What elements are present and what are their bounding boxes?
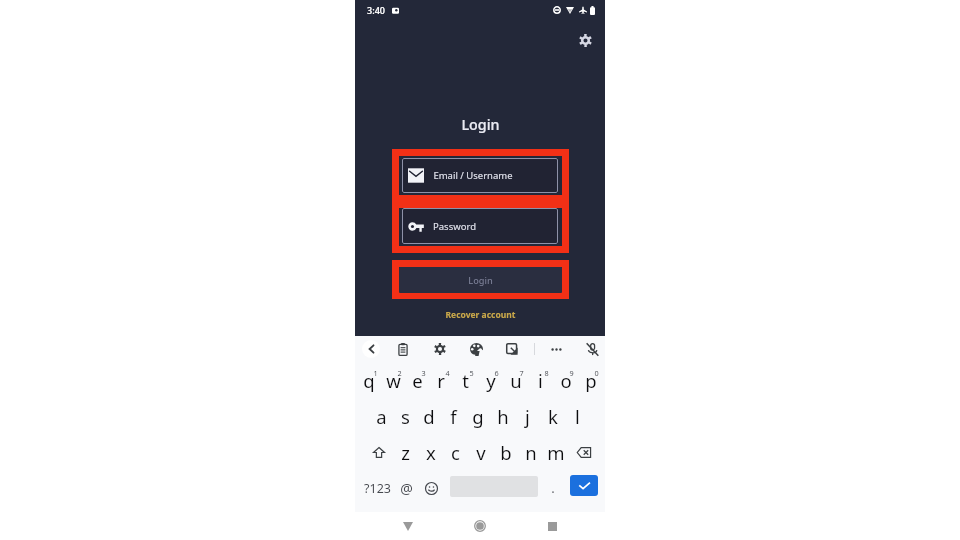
button[interactable]: Keyboard settings: [429, 338, 451, 360]
staticText: q: [363, 368, 375, 393]
staticText: 2: [397, 368, 402, 378]
staticText: i: [538, 368, 543, 393]
button[interactable]: a: [369, 398, 393, 434]
button[interactable]: Shift: [366, 434, 392, 470]
staticText: .: [551, 479, 555, 497]
button[interactable]: Mic off: [581, 338, 603, 360]
button[interactable]: c: [443, 434, 468, 470]
staticText: e: [412, 368, 423, 393]
staticText: u: [510, 368, 522, 393]
staticText: c: [451, 440, 460, 465]
staticText: a: [376, 404, 387, 429]
staticText: 3: [421, 368, 426, 378]
staticText: 6: [494, 368, 499, 378]
button[interactable]: p: [578, 362, 603, 398]
button[interactable]: Clipboard: [392, 338, 414, 360]
staticText: p: [585, 368, 597, 393]
staticText: 7: [519, 368, 524, 378]
button[interactable]: Back: [362, 340, 380, 358]
staticText: o: [560, 368, 572, 393]
button[interactable]: .: [546, 470, 560, 506]
button[interactable]: u: [503, 362, 528, 398]
staticText: n: [525, 440, 537, 465]
button[interactable]: e: [405, 362, 429, 398]
button[interactable]: ?123: [362, 470, 392, 506]
staticText: y: [486, 368, 496, 393]
staticText: 9: [569, 368, 574, 378]
staticText: f: [450, 404, 457, 429]
staticText: Password: [433, 220, 476, 233]
button[interactable]: l: [565, 398, 590, 434]
staticText: r: [437, 368, 445, 393]
button[interactable]: Recover account: [441, 307, 520, 323]
staticText: z: [401, 440, 410, 465]
button[interactable]: t: [453, 362, 478, 398]
button[interactable]: Recent apps: [540, 514, 564, 538]
button[interactable]: Enter: [570, 475, 598, 496]
staticText: Recover account: [445, 309, 516, 321]
button[interactable]: j: [515, 398, 540, 434]
staticText: ?123: [364, 480, 391, 497]
button[interactable]: s: [393, 398, 417, 434]
staticText: 5: [469, 368, 474, 378]
button[interactable]: b: [493, 434, 518, 470]
button[interactable]: m: [543, 434, 568, 470]
staticText: v: [476, 440, 486, 465]
button[interactable]: @: [397, 470, 415, 506]
button[interactable]: Home: [468, 514, 492, 538]
staticText: d: [423, 404, 435, 429]
staticText: w: [386, 368, 401, 393]
button[interactable]: v: [468, 434, 493, 470]
button[interactable]: x: [418, 434, 443, 470]
button[interactable]: h: [490, 398, 515, 434]
staticText: t: [462, 368, 469, 393]
staticText: k: [548, 404, 558, 429]
staticText: x: [426, 440, 436, 465]
button[interactable]: Theme: [465, 338, 487, 360]
button[interactable]: Email / Username: [402, 158, 558, 193]
staticText: j: [525, 404, 530, 429]
button[interactable]: Emoji: [422, 470, 440, 506]
staticText: 4: [445, 368, 450, 378]
button[interactable]: o: [553, 362, 578, 398]
button[interactable]: Backspace: [571, 434, 597, 470]
button[interactable]: Resize: [501, 338, 523, 360]
button[interactable]: Settings: [574, 29, 596, 51]
button[interactable]: Back: [396, 514, 420, 538]
button[interactable]: k: [540, 398, 565, 434]
staticText: h: [497, 404, 509, 429]
button[interactable]: More options: [545, 338, 567, 360]
button[interactable]: n: [518, 434, 543, 470]
button[interactable]: y: [478, 362, 503, 398]
staticText: @: [400, 479, 413, 498]
staticText: s: [401, 404, 410, 429]
staticText: l: [575, 404, 580, 429]
button[interactable]: i: [528, 362, 553, 398]
staticText: 0: [594, 368, 599, 378]
staticText: b: [500, 440, 512, 465]
button[interactable]: f: [441, 398, 465, 434]
button[interactable]: r: [429, 362, 453, 398]
staticText: g: [472, 404, 484, 429]
button[interactable]: Login: [399, 267, 562, 293]
staticText: m: [547, 440, 565, 465]
button[interactable]: d: [417, 398, 441, 434]
staticText: 8: [544, 368, 549, 378]
staticText: Email / Username: [433, 169, 513, 182]
button[interactable]: z: [392, 434, 418, 470]
staticText: Login: [468, 274, 493, 287]
button[interactable]: q: [357, 362, 381, 398]
staticText: 3:40: [367, 4, 385, 16]
staticText: 1: [373, 368, 378, 378]
button[interactable]: g: [465, 398, 490, 434]
button[interactable]: w: [381, 362, 405, 398]
button[interactable]: Password: [402, 208, 558, 244]
staticText: Login: [461, 115, 500, 134]
